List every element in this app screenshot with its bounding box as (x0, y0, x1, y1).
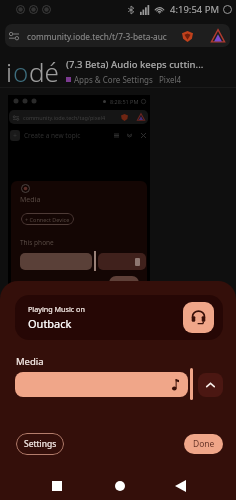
staticText: Create a new topic (24, 131, 81, 140)
staticText: 4:19:54 PM (170, 3, 220, 16)
staticText: + Connect Device (25, 216, 70, 223)
staticText: (7.3 Beta) Audio keeps cuttin... (66, 58, 204, 71)
button[interactable]: Done (184, 434, 223, 454)
button[interactable]: Headphones output (183, 302, 214, 333)
button[interactable]: Home (110, 478, 130, 494)
other: Site settings (9, 31, 19, 41)
staticText: Playing Music on (28, 304, 85, 314)
button[interactable]: Site settings (5, 24, 230, 47)
staticText: Apps & Core Settings (74, 74, 153, 85)
staticText: Settings (24, 438, 57, 450)
staticText: community.iode.tech/t/7-3-beta-auc (27, 31, 180, 42)
other: Brave shields (182, 31, 193, 42)
staticText: community.iode.tech/tag/pixel4 (23, 114, 106, 121)
button[interactable]: Settings (16, 433, 64, 455)
staticText: i (6, 54, 13, 89)
button[interactable]: Media volume (15, 372, 188, 397)
staticText: Pixel4 (159, 74, 182, 85)
staticText: Done (193, 438, 215, 450)
staticText: o (13, 54, 29, 89)
other: Profile (211, 29, 225, 43)
button[interactable]: Expand output options (198, 373, 223, 397)
staticText: Outback (28, 316, 72, 331)
button[interactable]: Recents (52, 478, 92, 494)
button[interactable]: Playing Music on (15, 295, 223, 340)
staticText: dé (29, 54, 59, 89)
staticText: Media (16, 355, 44, 368)
staticText: + (13, 131, 18, 141)
staticText: Media (20, 195, 41, 205)
staticText: 8:28:51 PM (110, 98, 139, 105)
staticText: This phone (20, 238, 54, 247)
button[interactable]: Back (168, 478, 192, 494)
